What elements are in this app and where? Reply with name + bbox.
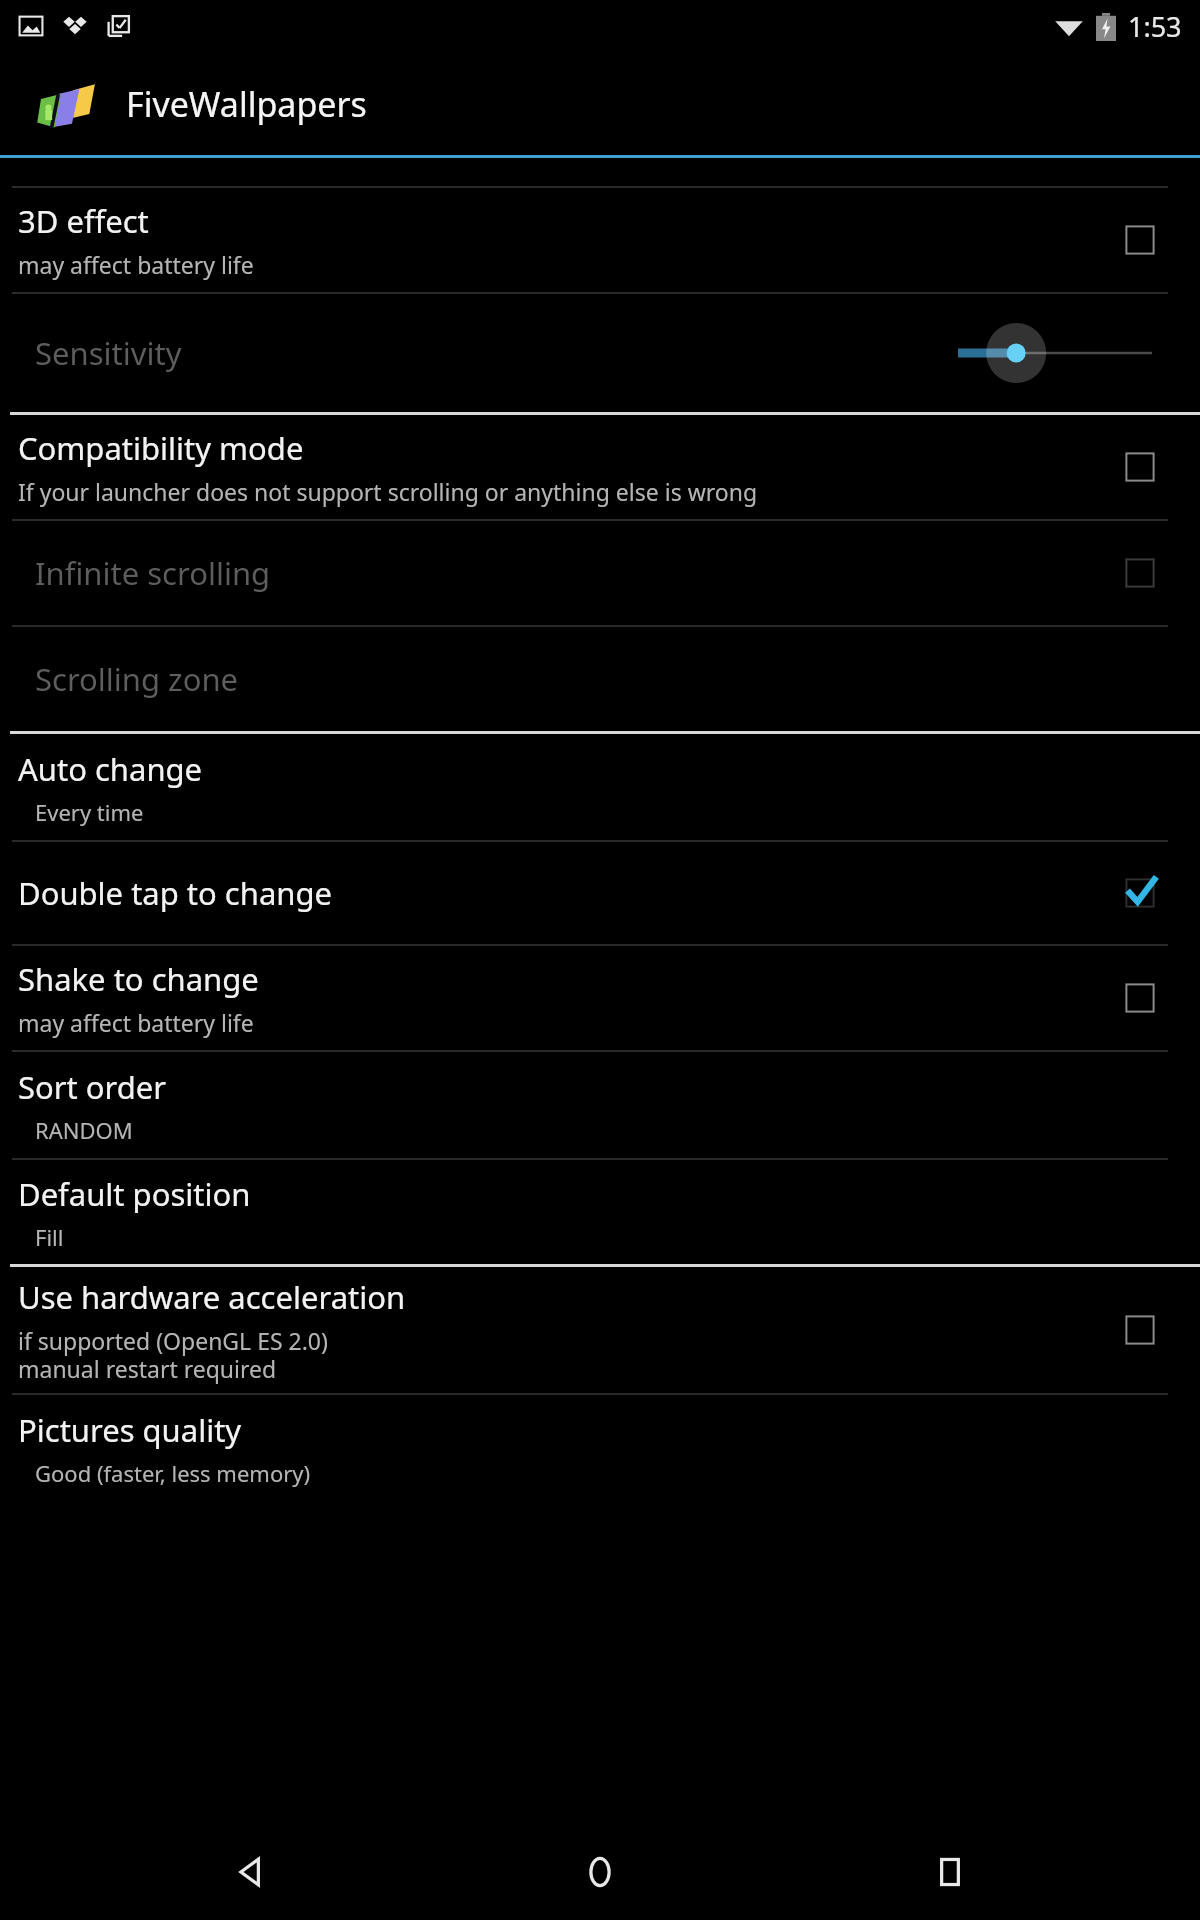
staticText: Sort order [18,1066,167,1108]
button[interactable]: FiveWallpapers [0,52,1200,155]
button[interactable]: Use hardware acceleration [0,1267,1200,1393]
staticText: may affect battery life [18,249,254,280]
staticText: Compatibility mode [18,427,304,469]
button[interactable]: Recent apps [850,1824,1050,1920]
button[interactable]: Infinite scrolling [1080,521,1200,625]
button[interactable]: Sensitivity slider [940,294,1200,412]
button[interactable]: Use hardware acceleration [1080,1267,1200,1393]
staticText: Sensitivity [35,332,940,374]
staticText: Double tap to change [18,872,332,914]
button[interactable]: Sort order [0,1052,1200,1158]
staticText: Scrolling zone [35,658,239,700]
button[interactable]: Shake to change [0,946,1200,1050]
staticText: 3D effect [18,200,149,242]
staticText: Every time [35,797,144,827]
staticText: Auto change [18,748,203,790]
button[interactable]: Double tap to change [0,842,1200,944]
button[interactable]: Default position [0,1160,1200,1264]
button[interactable]: Compatibility mode [1080,415,1200,519]
button[interactable]: Double tap to change [1080,842,1200,944]
staticText: RANDOM [35,1115,133,1145]
staticText: may affect battery life [18,1007,254,1038]
staticText: Default position [18,1173,251,1215]
button[interactable]: Home [500,1824,700,1920]
staticText: Pictures quality [18,1409,242,1451]
staticText: Fill [35,1222,64,1252]
button[interactable]: Auto change [0,734,1200,840]
staticText: if supported (OpenGL ES 2.0) manual rest… [18,1325,328,1385]
button[interactable]: 3D effect [0,188,1200,292]
button[interactable]: Scrolling zone [0,627,1200,731]
staticText: FiveWallpapers [126,81,367,127]
staticText: If your launcher does not support scroll… [18,476,758,507]
button[interactable]: Back [150,1824,350,1920]
staticText: 1:53 [1128,8,1182,45]
button[interactable]: Compatibility mode [0,415,1200,519]
button[interactable]: Shake to change [1080,946,1200,1050]
staticText: Use hardware acceleration [18,1276,406,1318]
staticText: Good (faster, less memory) [35,1458,311,1488]
button[interactable]: Sensitivity [0,294,1200,412]
staticText: Infinite scrolling [35,552,271,594]
button[interactable]: 3D effect [1080,188,1200,292]
staticText: Shake to change [18,958,259,1000]
button[interactable]: Pictures quality [0,1395,1200,1501]
button[interactable]: Infinite scrolling [0,521,1200,625]
